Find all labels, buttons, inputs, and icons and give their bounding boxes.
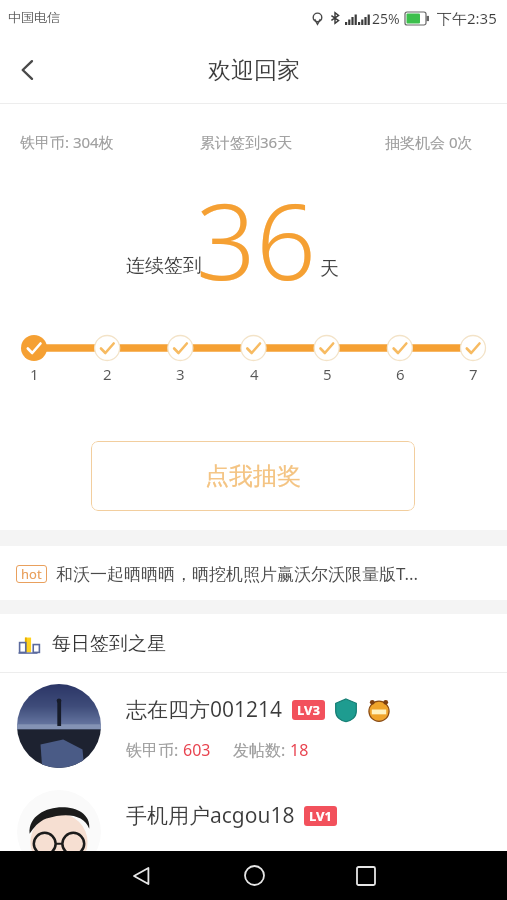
button[interactable]: hot	[0, 546, 507, 600]
staticText: 连续签到	[126, 254, 202, 278]
staticText: 欢迎回家	[208, 56, 300, 85]
staticText: 志在四方001214	[126, 695, 283, 724]
staticText: 1	[30, 364, 39, 384]
staticText: 累计签到36天	[200, 132, 293, 152]
staticText: 铁甲币: 304枚	[20, 132, 114, 152]
button[interactable]: 志在四方001214	[0, 673, 507, 779]
staticText: 每日签到之星	[52, 632, 166, 656]
staticText: 天	[320, 257, 339, 281]
staticText: 7	[469, 364, 478, 384]
staticText: 6	[396, 364, 405, 384]
staticText: 5	[323, 364, 332, 384]
staticText: 3	[176, 364, 185, 384]
staticText: 中国电信	[8, 9, 60, 25]
staticText: 下午2:35	[437, 8, 497, 28]
button[interactable]: Recent apps	[310, 851, 422, 900]
staticText: 36	[196, 168, 316, 308]
staticText: 点我抽奖	[205, 461, 301, 491]
staticText: 4	[250, 364, 259, 384]
staticText: hot	[21, 565, 42, 583]
staticText: 发帖数:	[233, 739, 290, 761]
button[interactable]: 点我抽奖	[91, 441, 415, 511]
staticText: LV3	[297, 701, 320, 719]
staticText: 抽奖机会 0次	[385, 132, 473, 152]
button[interactable]: Back	[0, 42, 56, 98]
button[interactable]: Back	[86, 851, 198, 900]
staticText: 手机用户acgou18	[126, 801, 295, 830]
staticText: 25%	[372, 9, 400, 28]
staticText: 603	[183, 739, 211, 761]
staticText: LV1	[309, 807, 332, 825]
button[interactable]: 手机用户acgou18	[0, 779, 507, 885]
staticText: 18	[290, 739, 309, 761]
staticText: 铁甲币:	[126, 739, 183, 761]
staticText: 和沃一起晒晒晒，晒挖机照片赢沃尔沃限量版T...	[56, 562, 419, 585]
staticText: 2	[103, 364, 112, 384]
button[interactable]: Home	[198, 851, 310, 900]
